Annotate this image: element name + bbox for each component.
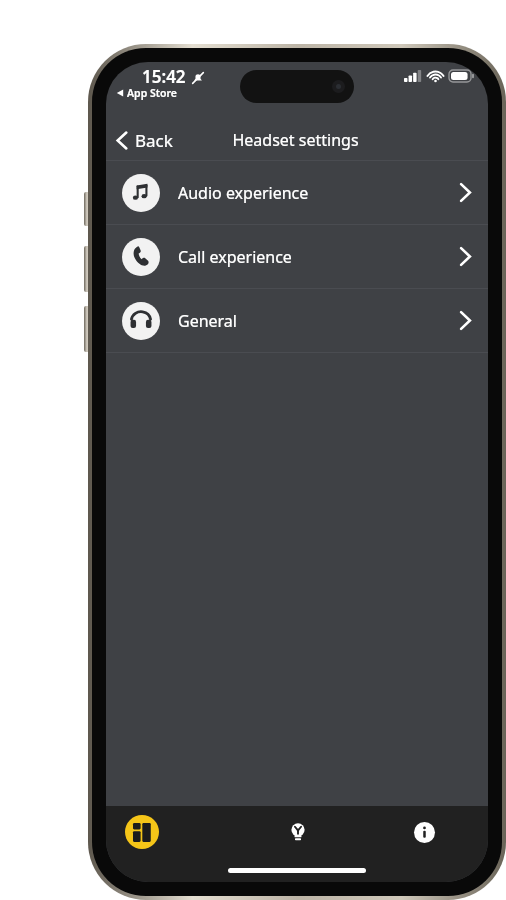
button[interactable]: Information [361,806,488,858]
staticText: Audio experience [178,182,309,204]
button[interactable]: Back [106,123,183,158]
staticText: Back [135,129,173,152]
button[interactable]: General [106,289,488,352]
staticText: 15:42 [142,65,186,88]
staticText: Headset settings [232,129,359,151]
button[interactable]: Dashboard [106,806,234,858]
staticText: General [178,310,237,332]
button[interactable]: Audio experience [106,161,488,224]
staticText: App Store [127,86,177,100]
button[interactable]: Call experience [106,225,488,288]
staticText: Call experience [178,246,292,268]
button[interactable]: Tips [234,806,361,858]
